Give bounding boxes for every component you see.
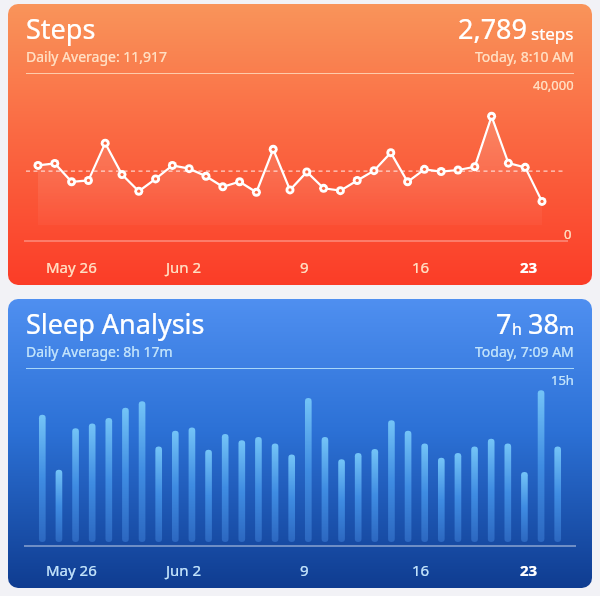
staticText: Jun 2	[166, 560, 202, 580]
staticText: 40,000	[533, 76, 574, 94]
staticText: 9	[300, 257, 309, 277]
staticText: Jun 2	[166, 257, 202, 277]
button[interactable]: Steps chart	[8, 4, 592, 285]
staticText: May 26	[46, 560, 97, 580]
staticText: 2,789	[458, 10, 528, 47]
staticText: 38	[528, 305, 559, 342]
staticText: Today, 8:10 AM	[475, 47, 574, 66]
staticText: h	[512, 318, 522, 340]
staticText: steps	[531, 22, 574, 45]
staticText: 9	[300, 560, 309, 580]
staticText: 23	[520, 560, 538, 580]
staticText: Sleep Analysis	[26, 305, 205, 342]
staticText: 7	[496, 305, 512, 342]
staticText: 23	[520, 257, 538, 277]
staticText: 0	[564, 225, 572, 243]
staticText: m	[559, 318, 574, 340]
staticText: May 26	[46, 257, 97, 277]
staticText: Daily Average: 11,917	[26, 47, 168, 66]
staticText: 15h	[551, 371, 574, 389]
button[interactable]: Sleep analysis chart	[8, 299, 592, 588]
staticText: 16	[412, 560, 430, 580]
staticText: Steps	[26, 10, 96, 47]
staticText: Daily Average: 8h 17m	[26, 342, 173, 361]
staticText: Today, 7:09 AM	[475, 342, 574, 361]
staticText: 16	[412, 257, 430, 277]
